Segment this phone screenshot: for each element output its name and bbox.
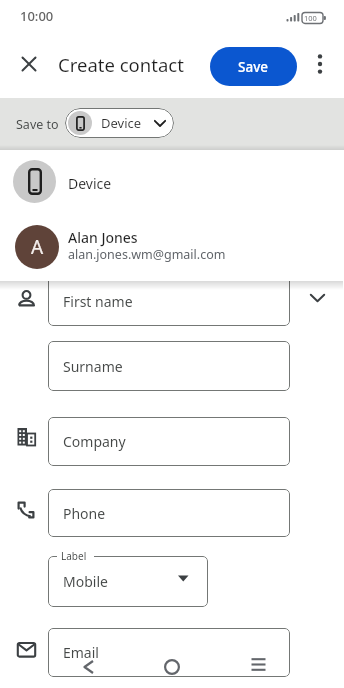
button[interactable]: Surname: [48, 341, 290, 391]
button[interactable]: Save: [210, 47, 297, 86]
button[interactable]: [150, 651, 194, 683]
button[interactable]: Phone: [48, 489, 290, 537]
staticText: Mobile: [63, 572, 108, 591]
button[interactable]: Company: [48, 417, 290, 466]
button[interactable]: Email: [48, 628, 290, 677]
button[interactable]: [236, 648, 280, 680]
staticText: 10:00: [20, 7, 54, 25]
staticText: Surname: [63, 357, 123, 376]
staticText: Device: [68, 174, 112, 193]
staticText: Phone: [63, 504, 106, 523]
button[interactable]: Device: [0, 153, 343, 213]
button[interactable]: [14, 49, 44, 79]
staticText: alan.jones.wm@gmail.com: [68, 246, 226, 263]
staticText: First name: [63, 292, 133, 311]
button[interactable]: [306, 50, 334, 78]
staticText: Device: [101, 114, 142, 132]
button[interactable]: First name: [48, 276, 290, 326]
staticText: A: [31, 234, 44, 260]
staticText: Save to: [16, 116, 59, 133]
staticText: Company: [63, 432, 126, 451]
staticText: Alan Jones: [68, 228, 138, 247]
button[interactable]: A: [0, 219, 343, 277]
button[interactable]: [300, 283, 334, 313]
staticText: Save: [238, 58, 269, 76]
staticText: Email: [63, 643, 99, 662]
staticText: Label: [61, 549, 87, 563]
button[interactable]: Device: [65, 108, 174, 138]
staticText: Create contact: [58, 52, 184, 77]
button[interactable]: [66, 651, 110, 683]
button[interactable]: Mobile: [48, 556, 208, 607]
staticText: 100: [304, 13, 317, 23]
